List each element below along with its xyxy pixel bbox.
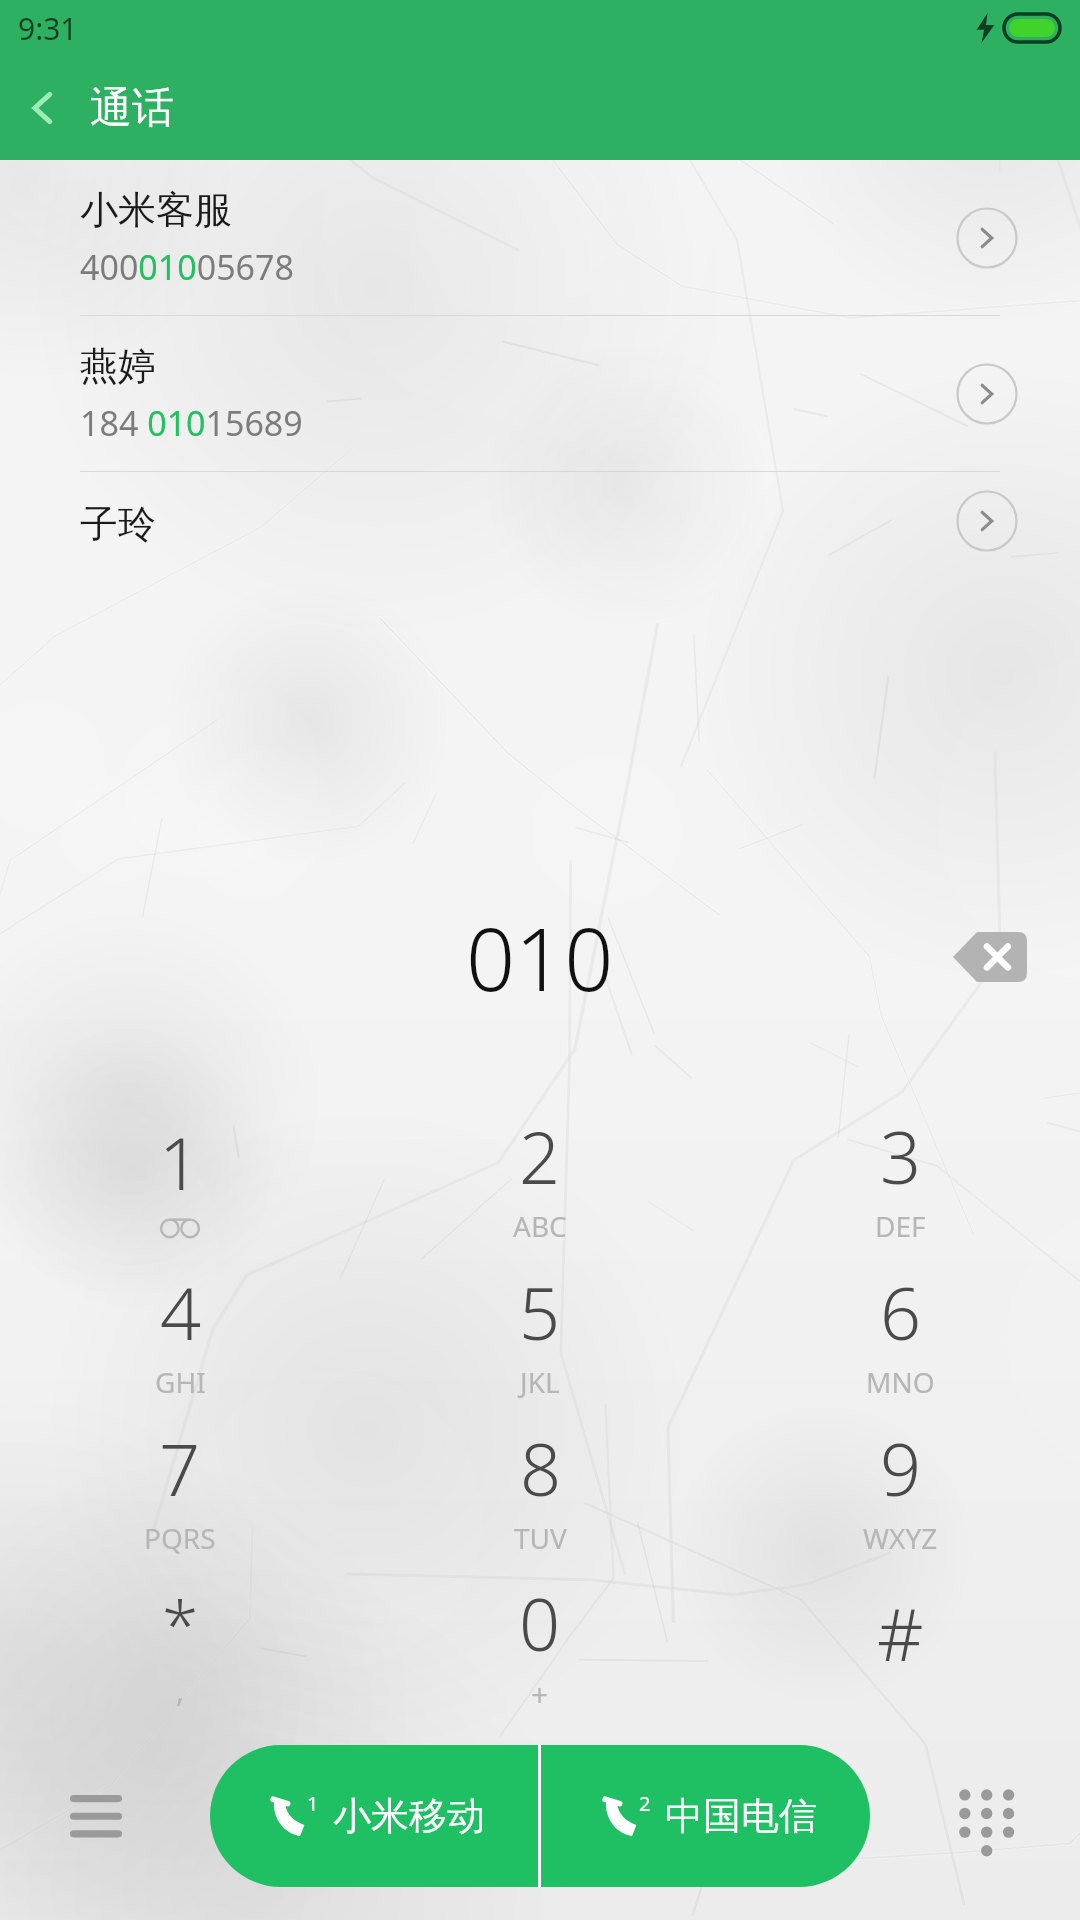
button[interactable]: 小米客服: [0, 160, 1080, 315]
staticText: PQRS: [144, 1519, 216, 1557]
staticText: 燕婷: [80, 342, 156, 390]
staticText: TUV: [514, 1519, 567, 1557]
button[interactable]: 6: [720, 1254, 1080, 1410]
button[interactable]: 0: [360, 1566, 720, 1722]
staticText: 6: [880, 1263, 922, 1361]
staticText: GHI: [155, 1363, 206, 1401]
staticText: 子玲: [80, 500, 156, 548]
staticText: 1: [159, 1113, 201, 1211]
staticText: 小米客服: [80, 186, 232, 234]
button[interactable]: 7: [0, 1410, 360, 1566]
staticText: 7: [159, 1419, 201, 1517]
staticText: 9: [880, 1419, 922, 1517]
button[interactable]: Dialpad: [926, 1758, 1042, 1874]
button[interactable]: Details: [956, 490, 1018, 552]
button[interactable]: 1: [210, 1745, 538, 1887]
button[interactable]: 9: [720, 1410, 1080, 1566]
staticText: ,: [176, 1670, 185, 1711]
staticText: *: [162, 1578, 199, 1668]
button[interactable]: 2: [360, 1098, 720, 1254]
staticText: WXYZ: [863, 1519, 938, 1557]
button[interactable]: Delete: [942, 921, 1038, 993]
staticText: 8: [520, 1419, 562, 1517]
staticText: 010: [466, 899, 614, 1016]
staticText: 3: [880, 1107, 922, 1205]
staticText: 小米移动: [333, 1792, 485, 1840]
button[interactable]: 3: [720, 1098, 1080, 1254]
staticText: 0: [519, 1574, 561, 1672]
staticText: 9:31: [18, 8, 78, 49]
button[interactable]: 2: [541, 1745, 870, 1887]
staticText: 中国电信: [665, 1792, 817, 1840]
staticText: 5: [519, 1263, 561, 1361]
button[interactable]: 4: [0, 1254, 360, 1410]
staticText: 4: [160, 1263, 202, 1361]
staticText: ABC: [513, 1207, 567, 1245]
staticText: DEF: [875, 1207, 926, 1245]
staticText: 2: [639, 1790, 651, 1817]
staticText: #: [877, 1584, 924, 1682]
button[interactable]: 燕婷: [0, 316, 1080, 471]
button[interactable]: Call log: [38, 1758, 154, 1874]
button[interactable]: Back: [0, 65, 86, 151]
staticText: 184 01015689: [80, 400, 303, 446]
staticText: 1: [307, 1790, 319, 1817]
button[interactable]: #: [720, 1566, 1080, 1722]
button[interactable]: 子玲: [0, 472, 1080, 592]
button[interactable]: 5: [360, 1254, 720, 1410]
button[interactable]: 1: [0, 1098, 360, 1254]
staticText: JKL: [520, 1363, 560, 1401]
button[interactable]: Details: [956, 363, 1018, 425]
staticText: 2: [519, 1107, 561, 1205]
button[interactable]: 8: [360, 1410, 720, 1566]
button[interactable]: Details: [956, 207, 1018, 269]
button[interactable]: *: [0, 1566, 360, 1722]
staticText: 40001005678: [80, 244, 294, 290]
staticText: +: [531, 1674, 549, 1715]
staticText: 通话: [90, 82, 174, 135]
staticText: MNO: [866, 1363, 935, 1401]
